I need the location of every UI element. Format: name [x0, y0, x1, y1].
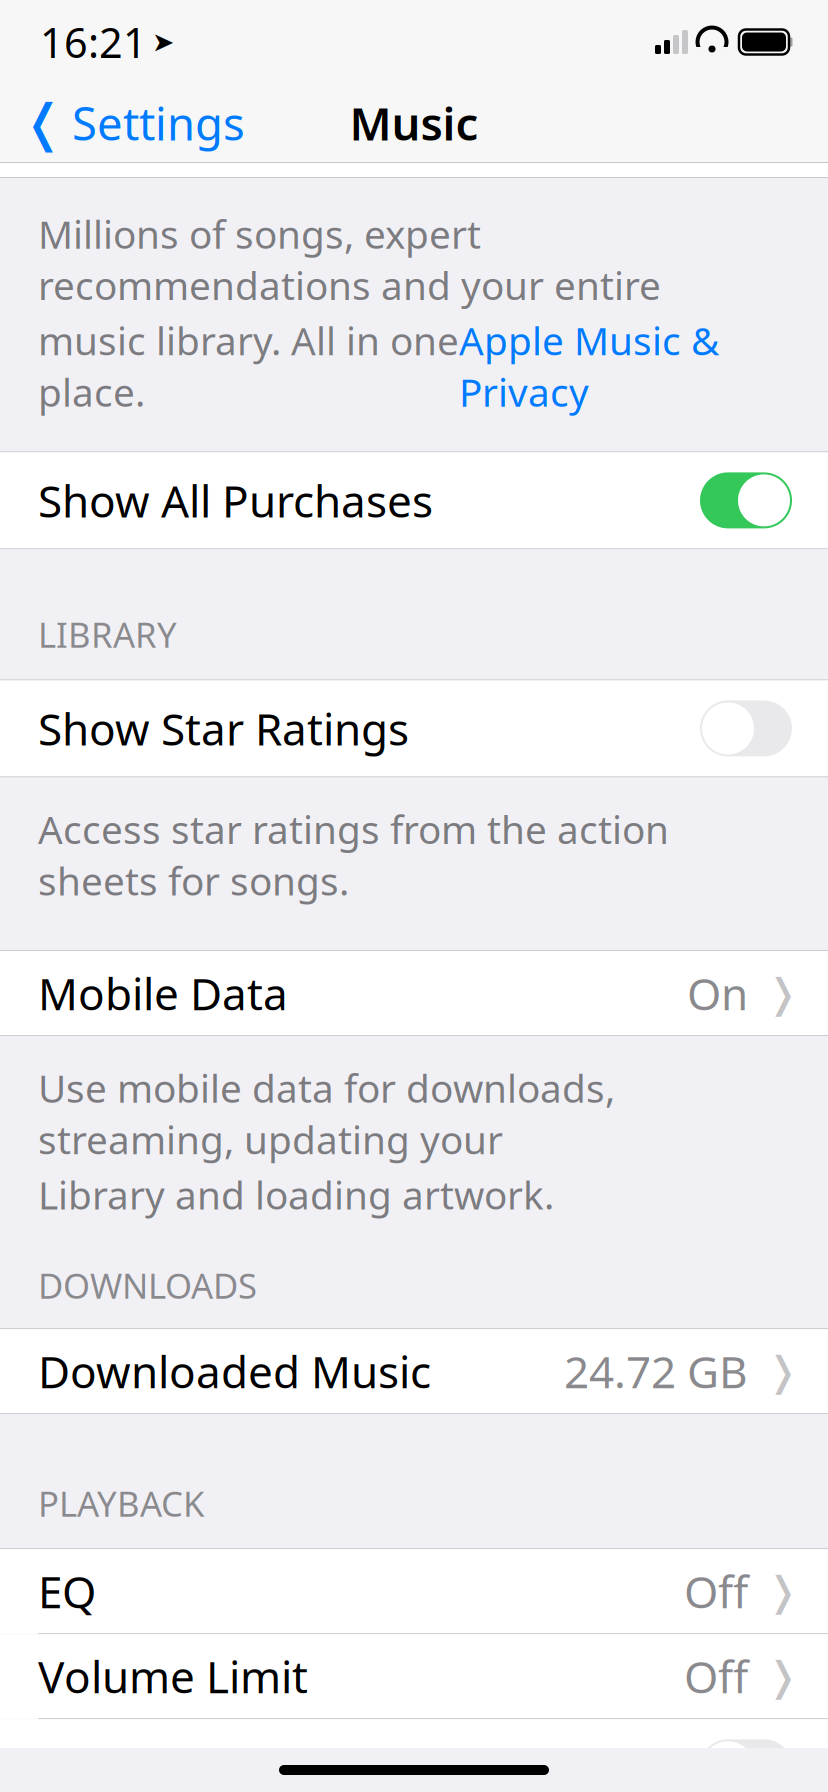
button[interactable]: Volume Limit	[0, 1634, 828, 1718]
staticText: LIBRARY	[38, 611, 177, 657]
button[interactable]: Apple Music & Privacy	[459, 315, 719, 417]
staticText: Millions of songs, expert recommendation…	[38, 208, 661, 311]
staticText: ❭	[766, 1348, 800, 1394]
staticText: Library and loading artwork.	[38, 1169, 554, 1220]
staticText: ❭	[766, 970, 800, 1016]
button[interactable]: Sound Check	[0, 1719, 828, 1792]
staticText: Use mobile data for downloads, streaming…	[38, 1062, 615, 1165]
staticText: PLAYBACK	[38, 1480, 204, 1526]
button[interactable]: Mobile Data	[0, 951, 828, 1035]
staticText: Settings	[72, 93, 245, 153]
staticText: Access star ratings from the action shee…	[38, 803, 669, 906]
staticText: EQ	[38, 1562, 96, 1620]
staticText: ❭	[766, 1568, 800, 1614]
button[interactable]: Show Star Ratings	[0, 680, 828, 776]
button[interactable]: Show All Purchases	[0, 452, 828, 548]
staticText: Sound Check	[38, 1738, 305, 1792]
staticText: Mobile Data	[38, 964, 288, 1022]
button[interactable]: Downloaded Music	[0, 1329, 828, 1413]
staticText: ➤	[152, 27, 174, 57]
staticText: DOWNLOADS	[38, 1262, 257, 1308]
staticText: Apple Music & Privacy	[459, 315, 719, 417]
staticText: Off	[684, 1647, 748, 1705]
staticText: Off	[684, 1562, 748, 1620]
staticText: Music	[349, 93, 478, 153]
staticText: ❬	[22, 94, 64, 152]
staticText: On	[687, 964, 748, 1022]
staticText: 24.72 GB	[564, 1342, 748, 1400]
staticText: music library. All in one place.	[38, 315, 459, 417]
button[interactable]: EQ	[0, 1549, 828, 1633]
staticText: Show All Purchases	[38, 471, 433, 530]
staticText: Volume Limit	[38, 1647, 308, 1705]
staticText: Show Star Ratings	[38, 699, 409, 758]
staticText: 16:21	[40, 15, 147, 69]
button[interactable]: ❬	[0, 85, 245, 161]
staticText: Downloaded Music	[38, 1342, 431, 1400]
staticText: ❭	[766, 1653, 800, 1699]
